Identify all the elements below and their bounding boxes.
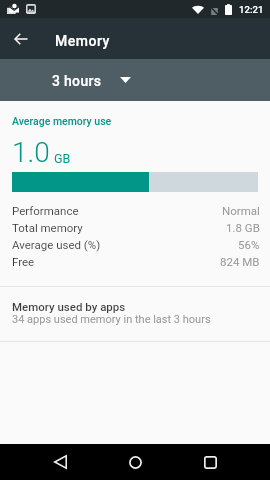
button[interactable]: Navigate up (0, 18, 41, 59)
button[interactable]: Home (117, 444, 153, 480)
staticText: 12:21 (239, 4, 264, 15)
staticText: 1.8 GB (226, 221, 260, 234)
staticText: GB (54, 151, 71, 166)
staticText: Free (12, 255, 35, 268)
staticText: Average used (%) (12, 238, 101, 251)
button[interactable]: Performance (0, 202, 270, 219)
staticText: 1.0 (12, 136, 50, 169)
staticText: Average memory use (12, 115, 112, 127)
staticText: 34 apps used memory in the last 3 hours (12, 313, 211, 326)
button[interactable]: Free (0, 253, 270, 270)
button[interactable]: Recent apps (192, 444, 228, 480)
staticText: Memory used by apps (12, 300, 126, 313)
staticText: 824 MB (220, 255, 260, 268)
button[interactable]: Total memory (0, 219, 270, 236)
button[interactable]: Back (42, 444, 78, 480)
button[interactable]: 3 hours (40, 64, 143, 96)
staticText: Normal (222, 204, 260, 217)
staticText: 56% (238, 238, 260, 251)
staticText: Memory (55, 33, 110, 49)
staticText: Performance (12, 204, 79, 217)
button[interactable]: Memory used by apps (0, 287, 270, 341)
staticText: Total memory (12, 221, 83, 234)
button[interactable]: Average used (%) (0, 236, 270, 253)
staticText: 3 hours (52, 73, 102, 89)
